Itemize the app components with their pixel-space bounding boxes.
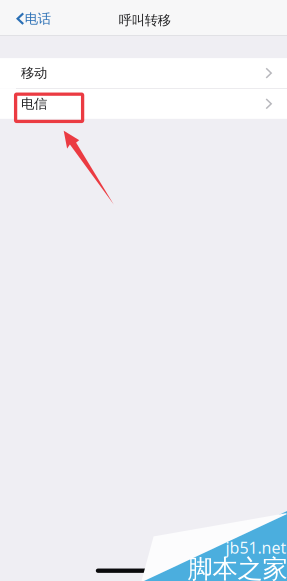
staticText: 电话 — [25, 10, 51, 27]
button[interactable]: 移动 — [0, 58, 287, 88]
staticText: 呼叫转移 — [119, 12, 171, 29]
staticText: jb51.net — [225, 537, 286, 558]
staticText: 电信 — [21, 96, 47, 112]
button[interactable]: 电信 — [0, 89, 287, 119]
button[interactable]: 电话 — [0, 0, 61, 32]
staticText: 脚本之家 — [187, 553, 287, 581]
staticText: 移动 — [21, 65, 47, 81]
